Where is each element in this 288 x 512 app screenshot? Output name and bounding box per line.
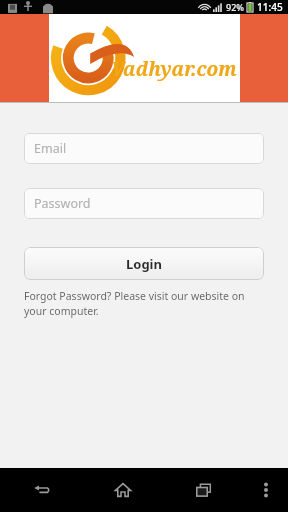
staticText: Password: [34, 195, 91, 212]
button[interactable]: Back: [0, 468, 82, 512]
staticText: Vadhyar.com: [111, 56, 237, 82]
staticText: Forgot Password? Please visit our websit…: [24, 289, 264, 318]
button[interactable]: Login: [24, 247, 264, 280]
button[interactable]: More options: [244, 468, 288, 512]
staticText: 11:45: [257, 0, 283, 14]
staticText: 92%: [226, 1, 244, 13]
staticText: Email: [34, 140, 67, 157]
button[interactable]: Home: [82, 468, 163, 512]
button[interactable]: Password: [24, 188, 264, 219]
button[interactable]: Email: [24, 133, 264, 164]
staticText: Login: [126, 255, 162, 273]
button[interactable]: Recent apps: [163, 468, 244, 512]
